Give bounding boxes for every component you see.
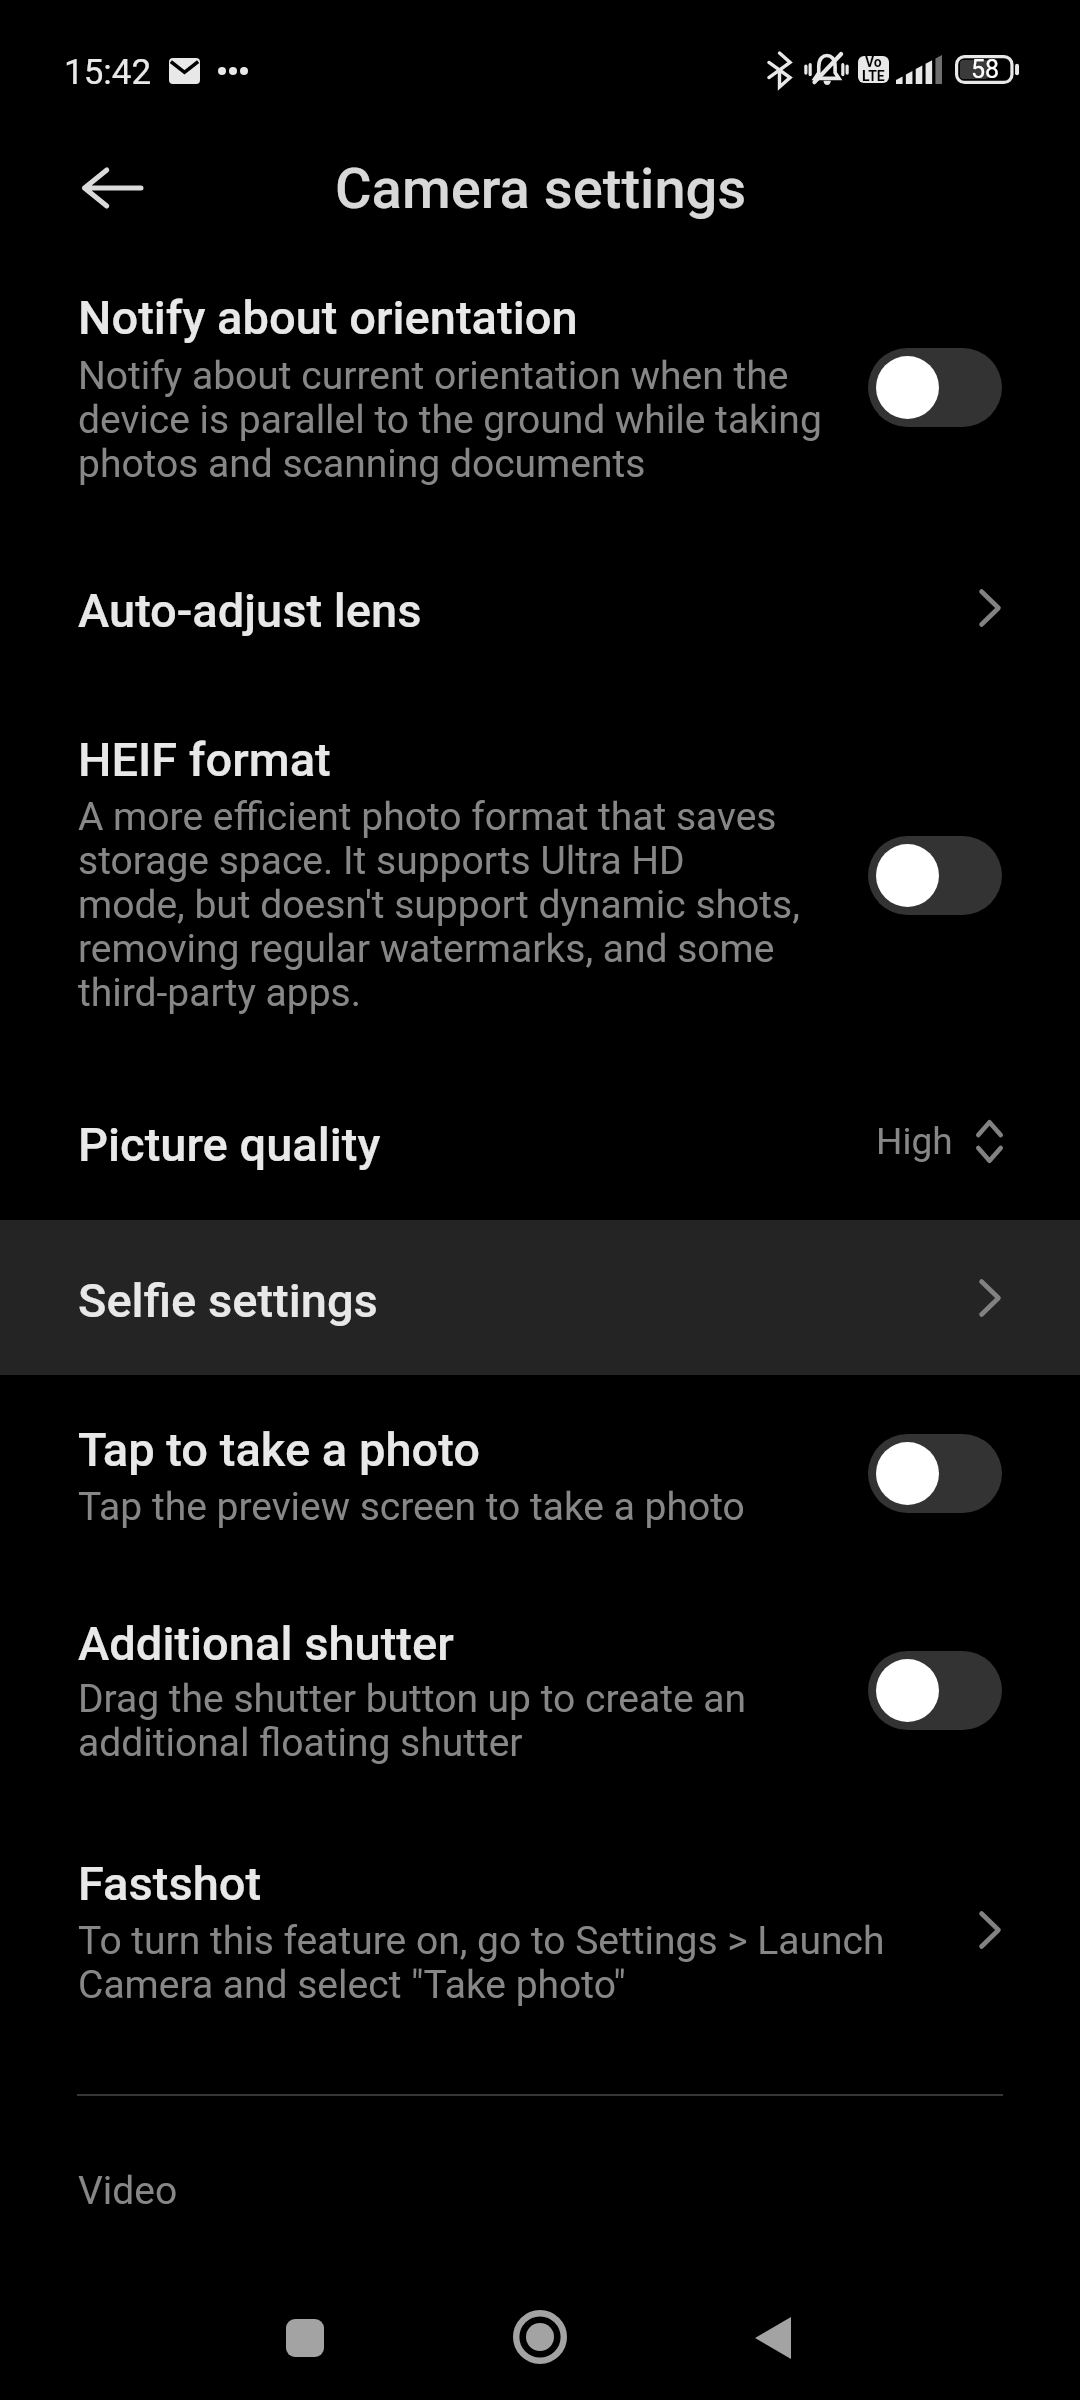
- button[interactable]: Auto-adjust lens: [0, 530, 1080, 690]
- button[interactable]: Home: [485, 2282, 595, 2392]
- staticText: A more efficient photo format that saves…: [78, 795, 938, 1015]
- staticText: Auto-adjust lens: [78, 583, 422, 638]
- button[interactable]: Fastshot: [0, 1830, 1080, 2030]
- staticText: HEIF format: [78, 732, 331, 787]
- button[interactable]: Picture quality: [0, 1070, 1080, 1220]
- staticText: Tap to take a photo: [78, 1422, 481, 1477]
- button[interactable]: Notify about orientation: [0, 268, 1080, 520]
- staticText: High: [876, 1121, 953, 1163]
- button[interactable]: HEIF format, off: [868, 836, 1002, 915]
- staticText: Camera settings: [335, 157, 747, 222]
- staticText: Notify about orientation: [78, 290, 578, 345]
- button[interactable]: Additional shutter: [0, 1580, 1080, 1790]
- button[interactable]: Recent apps: [250, 2283, 360, 2393]
- staticText: Fastshot: [78, 1856, 262, 1911]
- staticText: Notify about current orientation when th…: [78, 354, 938, 486]
- staticText: Selfie settings: [78, 1273, 378, 1328]
- staticText: 58: [971, 55, 1000, 84]
- staticText: LTE: [862, 69, 885, 83]
- staticText: Video: [78, 2169, 178, 2213]
- button[interactable]: HEIF format: [0, 700, 1080, 1040]
- staticText: To turn this feature on, go to Settings …: [78, 1919, 978, 2007]
- staticText: Drag the shutter button up to create an …: [78, 1677, 938, 1765]
- staticText: Vo: [865, 56, 882, 70]
- button[interactable]: Notify about orientation, off: [868, 348, 1002, 427]
- button[interactable]: Tap to take a photo, off: [868, 1434, 1002, 1513]
- staticText: 15:42: [64, 52, 152, 92]
- button[interactable]: Back: [51, 128, 171, 248]
- button[interactable]: Selfie settings: [0, 1220, 1080, 1375]
- button[interactable]: Additional shutter, off: [868, 1651, 1002, 1730]
- staticText: Tap the preview screen to take a photo: [78, 1485, 938, 1529]
- staticText: Picture quality: [78, 1117, 381, 1172]
- staticText: Additional shutter: [78, 1616, 454, 1671]
- button[interactable]: Change picture quality: [976, 1120, 1003, 1163]
- button[interactable]: Tap to take a photo: [0, 1390, 1080, 1560]
- button[interactable]: Back: [718, 2283, 828, 2393]
